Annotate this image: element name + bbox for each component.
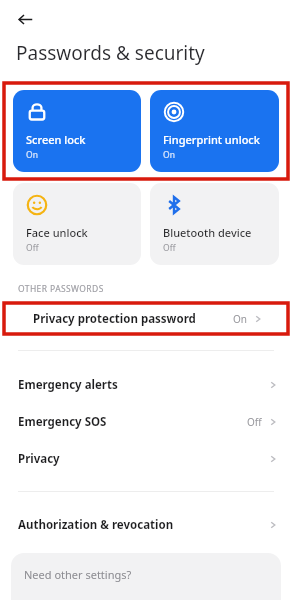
staticText: Face unlock: [26, 225, 88, 240]
staticText: Off: [163, 242, 176, 254]
staticText: Screen lock: [26, 132, 86, 147]
button[interactable]: Emergency alerts: [0, 366, 292, 403]
button[interactable]: Back: [12, 6, 38, 32]
staticText: Emergency SOS: [18, 414, 107, 430]
staticText: Need other settings?: [24, 567, 132, 582]
staticText: OTHER PASSWORDS: [18, 283, 104, 295]
staticText: Off: [247, 415, 262, 429]
staticText: Passwords & security: [16, 40, 205, 66]
staticText: Bluetooth device: [163, 225, 252, 240]
button[interactable]: Screen lock: [13, 90, 141, 172]
staticText: On: [163, 149, 175, 161]
staticText: Off: [26, 242, 39, 254]
button[interactable]: Fingerprint unlock: [150, 90, 279, 172]
button[interactable]: Face unlock: [13, 183, 141, 265]
button[interactable]: Authorization & revocation: [0, 506, 292, 543]
staticText: Authorization & revocation: [18, 517, 174, 533]
button[interactable]: Privacy: [0, 440, 292, 477]
button[interactable]: Emergency SOS: [0, 403, 292, 440]
staticText: On: [26, 149, 38, 161]
staticText: Emergency alerts: [18, 377, 118, 393]
button[interactable]: Need other settings?: [11, 553, 281, 600]
staticText: Privacy: [18, 451, 60, 467]
staticText: On: [233, 312, 247, 326]
staticText: Privacy protection password: [33, 311, 196, 327]
button[interactable]: Bluetooth device: [150, 183, 279, 265]
staticText: Fingerprint unlock: [163, 132, 260, 147]
button[interactable]: Privacy protection password: [15, 302, 277, 335]
